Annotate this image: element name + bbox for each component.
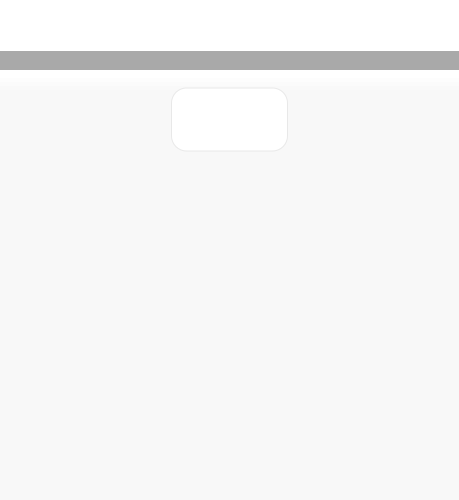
button[interactable]: Card: [171, 88, 287, 151]
